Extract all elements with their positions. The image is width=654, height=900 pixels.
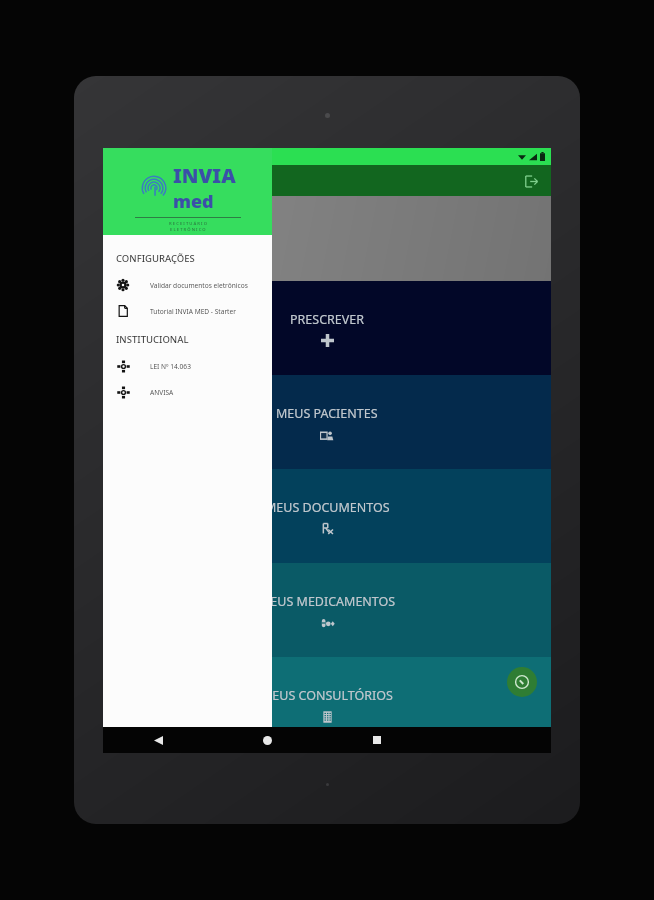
staticText: Validar documentos eletrônicos	[150, 281, 248, 290]
staticText: MEUS MEDICAMENTOS	[259, 593, 396, 610]
button[interactable]: Sair	[520, 170, 542, 192]
staticText: MEUS CONSULTÓRIOS	[261, 687, 393, 704]
button[interactable]: MEUS PACIENTES	[103, 375, 551, 469]
staticText: MEUS DOCUMENTOS	[265, 499, 390, 516]
staticText: LEI Nº 14.063	[150, 362, 191, 371]
button[interactable]: ANVISA	[103, 379, 272, 405]
button[interactable]: Voltar	[103, 727, 213, 753]
button[interactable]: Validar documentos eletrônicos	[103, 272, 272, 298]
button[interactable]: Tutorial INVIA MED - Starter	[103, 298, 272, 324]
staticText: CONFIGURAÇÕES	[116, 252, 195, 265]
button[interactable]: Início	[213, 727, 322, 753]
staticText: MINHAS PRESCRIÇÕES	[123, 210, 242, 225]
staticText: MEUS PACIENTES	[276, 405, 378, 422]
staticText: PRESCREVER	[290, 311, 365, 328]
button[interactable]: PRESCREVER	[103, 281, 551, 375]
button[interactable]: WhatsApp	[507, 667, 537, 697]
staticText: Tutorial INVIA MED - Starter	[150, 307, 236, 316]
staticText: INVIA	[173, 162, 236, 189]
staticText: E L E T R Ô N I C O	[170, 227, 206, 233]
button[interactable]: MEUS CONSULTÓRIOS	[103, 657, 551, 727]
button[interactable]: MEUS DOCUMENTOS	[103, 469, 551, 563]
button[interactable]: MEUS MEDICAMENTOS	[103, 563, 551, 657]
button[interactable]: Recentes	[322, 727, 431, 753]
button[interactable]: LEI Nº 14.063	[103, 353, 272, 379]
staticText: ANVISA	[150, 388, 174, 397]
staticText: R E C E I T U Á R I O	[169, 221, 207, 227]
staticText: INSTITUCIONAL	[116, 333, 189, 346]
staticText: med	[173, 189, 214, 214]
